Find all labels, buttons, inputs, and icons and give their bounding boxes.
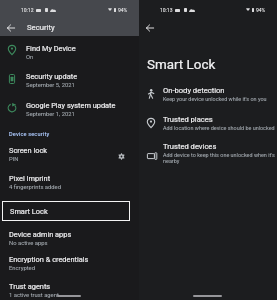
button[interactable]: Smart Lock [2,201,130,221]
button[interactable] [0,142,139,166]
button[interactable] [0,66,139,92]
button[interactable] [0,170,139,194]
staticText: PIN [9,156,19,163]
staticText: Pixel Imprint [9,174,51,183]
staticText: 1 active trust agent [9,292,59,299]
staticText: Trusted devices [163,142,217,151]
staticText: Add device to keep this one unlocked whe… [163,152,277,165]
button[interactable]: Back [142,20,157,35]
button[interactable] [0,278,139,300]
staticText: Smart Lock [10,207,48,216]
staticText: Device security [9,131,50,138]
staticText: Encryption & credentials [9,255,89,264]
staticText: Screen lock [9,146,48,155]
staticText: 94% [118,7,128,13]
button[interactable]: Back [3,20,18,35]
staticText: On [26,54,34,61]
staticText: 10:12 [21,7,34,13]
staticText: Keep your device unlocked while it's on … [163,96,277,102]
staticText: Security update [26,72,78,81]
staticText: Encrypted [9,265,35,272]
button[interactable] [139,109,277,135]
staticText: 10:13 [160,7,173,13]
button[interactable] [0,95,139,121]
button[interactable] [139,136,277,162]
staticText: September 1, 2021 [26,111,75,118]
staticText: September 5, 2021 [26,82,75,89]
staticText: Find My Device [26,44,76,53]
staticText: Smart Lock [147,57,216,73]
button[interactable] [139,80,277,106]
button[interactable] [0,38,139,64]
staticText: No active apps [9,240,48,247]
staticText: Add location where device should be unlo… [163,125,277,131]
staticText: Trust agents [9,282,51,291]
staticText: On-body detection [163,86,225,95]
staticText: Google Play system update [26,101,116,110]
button[interactable]: Screen lock settings [114,149,128,163]
staticText: Device admin apps [9,230,72,239]
button[interactable] [0,226,139,250]
staticText: 94% [256,7,266,13]
staticText: Trusted places [163,115,213,124]
staticText: 4 fingerprints added [9,184,62,191]
button[interactable] [0,251,139,275]
staticText: Security [27,23,55,32]
